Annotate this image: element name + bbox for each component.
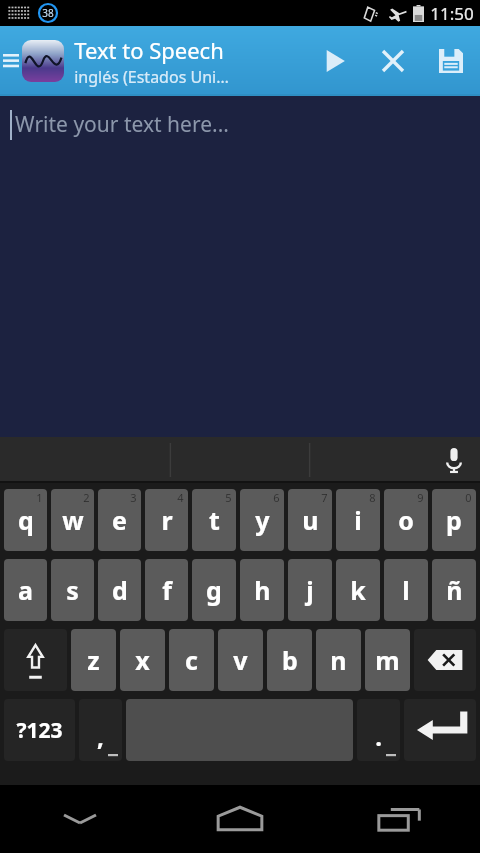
button[interactable]: s bbox=[51, 559, 94, 621]
staticText: e bbox=[112, 503, 127, 537]
staticText: 11:50 bbox=[430, 2, 474, 25]
button[interactable]: u bbox=[288, 489, 332, 551]
staticText: b bbox=[282, 643, 298, 677]
button[interactable]: c bbox=[169, 629, 214, 691]
staticText: 38 bbox=[42, 6, 54, 20]
staticText: 5 bbox=[225, 490, 232, 505]
button[interactable]: Navigation drawer bbox=[0, 26, 22, 96]
button[interactable]: Play bbox=[306, 26, 364, 96]
button[interactable]: h bbox=[240, 559, 284, 621]
staticText: 7 bbox=[321, 490, 328, 505]
staticText: 1 bbox=[36, 490, 43, 505]
button[interactable]: Recent apps bbox=[320, 785, 480, 853]
button[interactable]: . bbox=[357, 699, 400, 761]
staticText: h bbox=[254, 573, 271, 607]
staticText: r bbox=[161, 503, 173, 537]
staticText: j bbox=[306, 573, 314, 607]
staticText: ?123 bbox=[16, 716, 63, 745]
staticText: 9 bbox=[417, 490, 424, 505]
staticText: . bbox=[375, 720, 382, 753]
staticText: g bbox=[206, 573, 222, 607]
button[interactable]: y bbox=[240, 489, 284, 551]
staticText: w bbox=[62, 503, 84, 537]
staticText: c bbox=[185, 643, 198, 677]
staticText: 0 bbox=[465, 490, 472, 505]
button[interactable]: o bbox=[384, 489, 428, 551]
button[interactable]: Save bbox=[422, 26, 480, 96]
staticText: o bbox=[398, 503, 414, 537]
button[interactable]: f bbox=[145, 559, 188, 621]
button[interactable]: d bbox=[98, 559, 141, 621]
button[interactable]: e bbox=[98, 489, 141, 551]
staticText: 2 bbox=[83, 490, 90, 505]
staticText: x bbox=[135, 643, 150, 677]
staticText: l bbox=[402, 573, 410, 607]
button[interactable]: Voice input bbox=[428, 437, 480, 483]
staticText: Text to Speech bbox=[74, 35, 224, 65]
button[interactable]: j bbox=[288, 559, 332, 621]
button[interactable]: Enter bbox=[404, 699, 476, 761]
button[interactable]: b bbox=[267, 629, 312, 691]
staticText: p bbox=[446, 503, 462, 537]
button[interactable]: q bbox=[4, 489, 47, 551]
button[interactable]: p bbox=[432, 489, 476, 551]
staticText: t bbox=[209, 503, 220, 537]
button[interactable]: Close bbox=[364, 26, 422, 96]
staticText: 6 bbox=[273, 490, 280, 505]
staticText: n bbox=[330, 643, 347, 677]
button[interactable]: Backspace bbox=[414, 629, 476, 691]
button[interactable]: g bbox=[192, 559, 236, 621]
staticText: Write your text here... bbox=[15, 110, 229, 139]
staticText: , bbox=[97, 720, 104, 753]
staticText: k bbox=[350, 573, 366, 607]
staticText: inglés (Estados Uni… bbox=[74, 66, 229, 88]
button[interactable]: z bbox=[71, 629, 116, 691]
button[interactable]: m bbox=[365, 629, 410, 691]
button[interactable]: a bbox=[4, 559, 47, 621]
staticText: a bbox=[18, 573, 33, 607]
button[interactable]: n bbox=[316, 629, 361, 691]
button[interactable]: i bbox=[336, 489, 380, 551]
staticText: s bbox=[66, 573, 79, 607]
button[interactable]: Home bbox=[160, 785, 320, 853]
staticText: 8 bbox=[369, 490, 376, 505]
staticText: d bbox=[112, 573, 128, 607]
staticText: 3 bbox=[130, 490, 137, 505]
staticText: y bbox=[255, 503, 270, 537]
button[interactable]: x bbox=[120, 629, 165, 691]
button[interactable]: l bbox=[384, 559, 428, 621]
staticText: f bbox=[162, 573, 172, 607]
staticText: u bbox=[302, 503, 319, 537]
staticText: q bbox=[18, 503, 34, 537]
button[interactable]: t bbox=[192, 489, 236, 551]
button[interactable]: Back bbox=[0, 785, 160, 853]
staticText: m bbox=[375, 643, 400, 677]
button[interactable]: ñ bbox=[432, 559, 476, 621]
staticText: v bbox=[233, 643, 248, 677]
button[interactable]: v bbox=[218, 629, 263, 691]
staticText: 4 bbox=[177, 490, 184, 505]
button[interactable]: , bbox=[79, 699, 122, 761]
button[interactable]: w bbox=[51, 489, 94, 551]
button[interactable]: ?123 bbox=[4, 699, 75, 761]
button[interactable]: r bbox=[145, 489, 188, 551]
staticText: z bbox=[87, 643, 100, 677]
button[interactable]: k bbox=[336, 559, 380, 621]
button[interactable]: Write your text here... bbox=[0, 96, 480, 437]
button[interactable]: Shift bbox=[4, 629, 67, 691]
staticText: i bbox=[354, 503, 362, 537]
staticText: ñ bbox=[446, 573, 463, 607]
